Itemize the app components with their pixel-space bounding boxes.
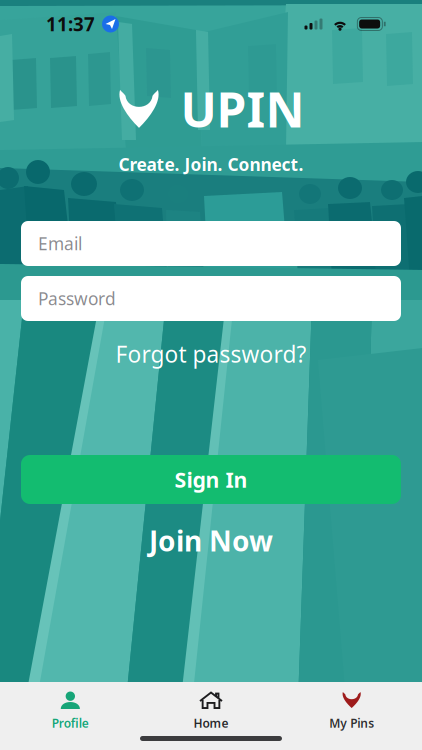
staticText: Forgot password? xyxy=(115,339,306,369)
button[interactable]: Forgot password? xyxy=(21,331,401,377)
staticText: Email xyxy=(38,232,82,255)
button[interactable]: Password xyxy=(21,276,401,321)
button[interactable]: Home xyxy=(141,693,281,729)
staticText: Password xyxy=(38,287,116,310)
staticText: Join Now xyxy=(149,522,273,559)
button[interactable]: Join Now xyxy=(0,516,422,565)
button[interactable]: My Pins xyxy=(281,693,422,729)
staticText: Profile xyxy=(52,715,89,731)
button[interactable]: Sign In xyxy=(21,455,401,504)
button[interactable]: Profile xyxy=(0,693,141,729)
staticText: My Pins xyxy=(329,715,374,731)
staticText: Home xyxy=(193,715,228,731)
button[interactable]: Email xyxy=(21,221,401,266)
staticText: Sign In xyxy=(174,465,247,494)
staticText: Create. Join. Connect. xyxy=(118,153,303,176)
staticText: UPIN xyxy=(180,77,304,141)
staticText: 11:37 xyxy=(46,12,95,36)
